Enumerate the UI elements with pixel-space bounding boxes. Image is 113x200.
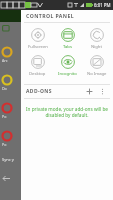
- button[interactable]: Fullscreen: [23, 26, 52, 52]
- staticText: Fullscreen: [28, 44, 48, 50]
- staticText: Sync y: [2, 157, 14, 162]
- staticText: CONTROL PANEL: [26, 12, 75, 19]
- staticText: 6:01 PM: [94, 2, 111, 8]
- staticText: Desktop: [29, 71, 46, 77]
- staticText: In private mode, your add-ons will be di…: [25, 106, 109, 118]
- button[interactable]: Tabs: [53, 26, 82, 52]
- staticText: Tabs: [63, 44, 72, 50]
- staticText: Night: [91, 44, 102, 50]
- staticText: ADD-ONS: [26, 88, 52, 95]
- button[interactable]: More options: [97, 86, 108, 97]
- staticText: Do: [2, 86, 7, 91]
- staticText: Arc: [2, 58, 8, 63]
- button[interactable]: Desktop: [23, 53, 52, 79]
- staticText: Incognito: [58, 71, 77, 77]
- staticText: Po: [2, 142, 7, 147]
- button[interactable]: No Image: [82, 53, 111, 79]
- staticText: No Image: [87, 71, 107, 77]
- button[interactable]: Night: [82, 26, 111, 52]
- staticText: Po: [2, 114, 7, 119]
- button[interactable]: Incognito: [53, 53, 82, 79]
- button[interactable]: Add add-on: [84, 86, 95, 97]
